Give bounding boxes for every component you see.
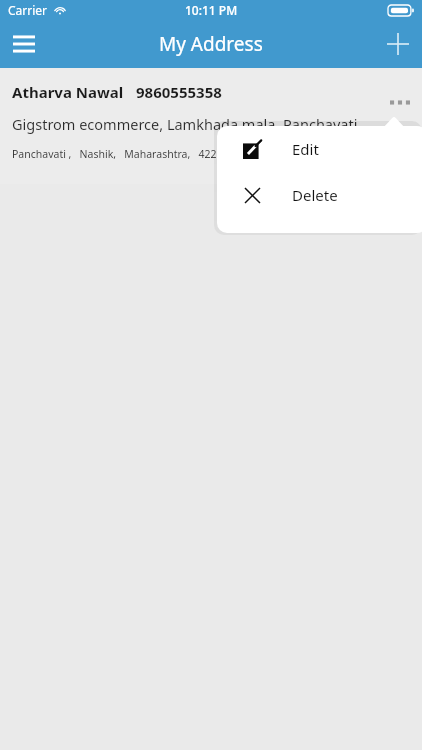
button[interactable]: More options (378, 84, 422, 120)
staticText: 9860555358 (136, 82, 222, 102)
staticText: Atharva Nawal (12, 82, 124, 102)
button[interactable]: Delete (217, 172, 422, 218)
button[interactable]: Edit (217, 126, 422, 172)
staticText: My Address (159, 31, 263, 57)
staticText: Delete (292, 185, 338, 205)
button[interactable]: Menu (0, 20, 48, 68)
staticText: Gigstrom ecommerce, Lamkhada mala, Panch… (12, 114, 358, 134)
staticText: Panchavati , Nashik, Maharashtra, 422003 (12, 147, 235, 161)
staticText: Edit (292, 139, 319, 159)
staticText: Carrier (8, 2, 48, 18)
button[interactable]: Add address (374, 20, 422, 68)
staticText: 10:11 PM (185, 2, 238, 18)
button[interactable]: Atharva Nawal (0, 68, 422, 184)
